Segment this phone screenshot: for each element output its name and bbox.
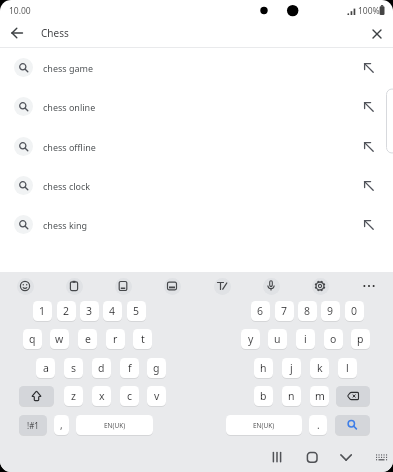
staticText: i <box>304 332 307 346</box>
button[interactable] <box>359 276 379 296</box>
button[interactable]: o <box>324 329 343 349</box>
button[interactable]: chess clock <box>0 166 393 205</box>
staticText: 4 <box>109 304 116 318</box>
staticText: chess offline <box>43 141 96 153</box>
button[interactable]: q <box>23 329 42 349</box>
button[interactable]: p <box>351 329 370 349</box>
button[interactable]: 4 <box>103 301 122 321</box>
staticText: v <box>154 389 160 403</box>
staticText: 2 <box>63 304 70 318</box>
button[interactable]: g <box>147 358 166 378</box>
staticText: m <box>315 389 325 403</box>
button[interactable]: EN(UK) <box>226 415 302 435</box>
staticText: !#1 <box>27 420 39 431</box>
button[interactable]: chess game <box>0 48 393 87</box>
staticText: z <box>71 389 76 403</box>
staticText: , <box>60 418 63 432</box>
button[interactable]: 7 <box>275 301 294 321</box>
button[interactable]: EN(UK) <box>76 415 153 435</box>
button[interactable]: chess offline <box>0 127 393 166</box>
button[interactable] <box>337 448 362 472</box>
button[interactable] <box>64 276 84 296</box>
staticText: h <box>260 361 267 375</box>
staticText: EN(UK) <box>104 421 126 430</box>
button[interactable]: 3 <box>80 301 99 321</box>
staticText: 5 <box>133 304 140 318</box>
button[interactable]: x <box>92 386 111 406</box>
button[interactable] <box>15 276 35 296</box>
button[interactable]: h <box>254 358 273 378</box>
button[interactable] <box>19 386 54 406</box>
button[interactable]: 0 <box>345 301 364 321</box>
staticText: 10.00 <box>9 5 31 17</box>
button[interactable]: u <box>268 329 287 349</box>
button[interactable] <box>266 448 291 472</box>
button[interactable]: j <box>282 358 301 378</box>
button[interactable] <box>335 415 370 435</box>
staticText: w <box>55 332 64 346</box>
button[interactable] <box>336 386 370 406</box>
button[interactable]: l <box>338 358 357 378</box>
staticText: 6 <box>257 304 264 318</box>
button[interactable] <box>261 276 281 296</box>
staticText: chess online <box>43 101 96 113</box>
button[interactable]: n <box>282 386 301 406</box>
staticText: y <box>248 332 254 346</box>
button[interactable]: e <box>78 329 97 349</box>
button[interactable]: 6 <box>251 301 270 321</box>
staticText: EN(UK) <box>253 421 275 430</box>
staticText: l <box>346 361 349 375</box>
button[interactable]: b <box>254 386 273 406</box>
staticText: 100% <box>358 5 380 17</box>
staticText: n <box>288 389 295 403</box>
staticText: chess king <box>43 219 88 231</box>
button[interactable] <box>371 448 393 472</box>
button[interactable] <box>303 448 328 472</box>
staticText: q <box>29 332 36 346</box>
button[interactable] <box>365 22 389 46</box>
button[interactable]: . <box>309 415 327 435</box>
button[interactable]: m <box>310 386 329 406</box>
button[interactable]: d <box>92 358 111 378</box>
button[interactable]: c <box>120 386 139 406</box>
staticText: 9 <box>327 304 334 318</box>
button[interactable]: 8 <box>298 301 317 321</box>
staticText: j <box>290 361 293 375</box>
staticText: k <box>317 361 323 375</box>
button[interactable]: s <box>64 358 83 378</box>
staticText: 0 <box>351 304 358 318</box>
button[interactable]: 2 <box>57 301 76 321</box>
button[interactable]: k <box>310 358 329 378</box>
button[interactable] <box>5 21 29 45</box>
button[interactable]: chess online <box>0 87 393 126</box>
button[interactable] <box>310 276 330 296</box>
button[interactable] <box>162 276 182 296</box>
button[interactable]: z <box>64 386 83 406</box>
staticText: e <box>85 332 91 346</box>
button[interactable]: !#1 <box>19 415 47 435</box>
button[interactable]: a <box>36 358 55 378</box>
staticText: t <box>141 332 145 346</box>
staticText: chess game <box>43 62 93 74</box>
button[interactable]: r <box>106 329 125 349</box>
staticText: f <box>128 361 132 375</box>
staticText: p <box>357 332 364 346</box>
button[interactable]: 5 <box>127 301 146 321</box>
button[interactable]: chess king <box>0 205 393 244</box>
staticText: g <box>153 361 160 375</box>
button[interactable]: , <box>54 415 69 435</box>
button[interactable]: v <box>147 386 166 406</box>
staticText: chess clock <box>43 180 91 192</box>
staticText: s <box>71 361 77 375</box>
button[interactable]: f <box>120 358 139 378</box>
button[interactable] <box>113 276 133 296</box>
button[interactable]: w <box>50 329 69 349</box>
button[interactable]: y <box>241 329 260 349</box>
button[interactable]: i <box>296 329 315 349</box>
button[interactable]: 9 <box>321 301 340 321</box>
button[interactable]: t <box>133 329 152 349</box>
button[interactable] <box>212 276 232 296</box>
staticText: a <box>43 361 49 375</box>
button[interactable]: 1 <box>33 301 52 321</box>
staticText: 1 <box>39 304 46 318</box>
